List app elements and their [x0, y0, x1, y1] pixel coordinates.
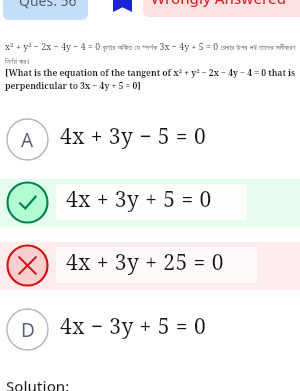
button[interactable]: 4x + 3y + 5 = 0: [0, 181, 300, 224]
staticText: [What is the equation of the tangent of …: [5, 67, 296, 92]
staticText: 4x + 3y + 5 = 0: [66, 185, 212, 214]
staticText: 4x − 3y + 5 = 0: [60, 312, 207, 341]
staticText: Wrongly Answered: [151, 0, 286, 8]
staticText: A: [21, 127, 34, 153]
button[interactable]: Bookmark: [113, 0, 132, 12]
staticText: Ques. 56: [19, 0, 77, 10]
button[interactable]: Wrongly Answered: [143, 0, 300, 17]
staticText: 4x + 3y + 25 = 0: [66, 248, 224, 277]
button[interactable]: D: [0, 308, 300, 351]
button[interactable]: Ques. 56: [3, 0, 88, 20]
staticText: 4x + 3y − 5 = 0: [60, 122, 207, 151]
button[interactable]: A: [0, 118, 300, 161]
staticText: Solution:: [6, 376, 70, 391]
staticText: x² + y² − 2x − 4y − 4 = 0 বৃত্তের অঙ্কিত…: [5, 41, 296, 66]
button[interactable]: 4x + 3y + 25 = 0: [0, 244, 300, 287]
staticText: D: [21, 317, 35, 343]
